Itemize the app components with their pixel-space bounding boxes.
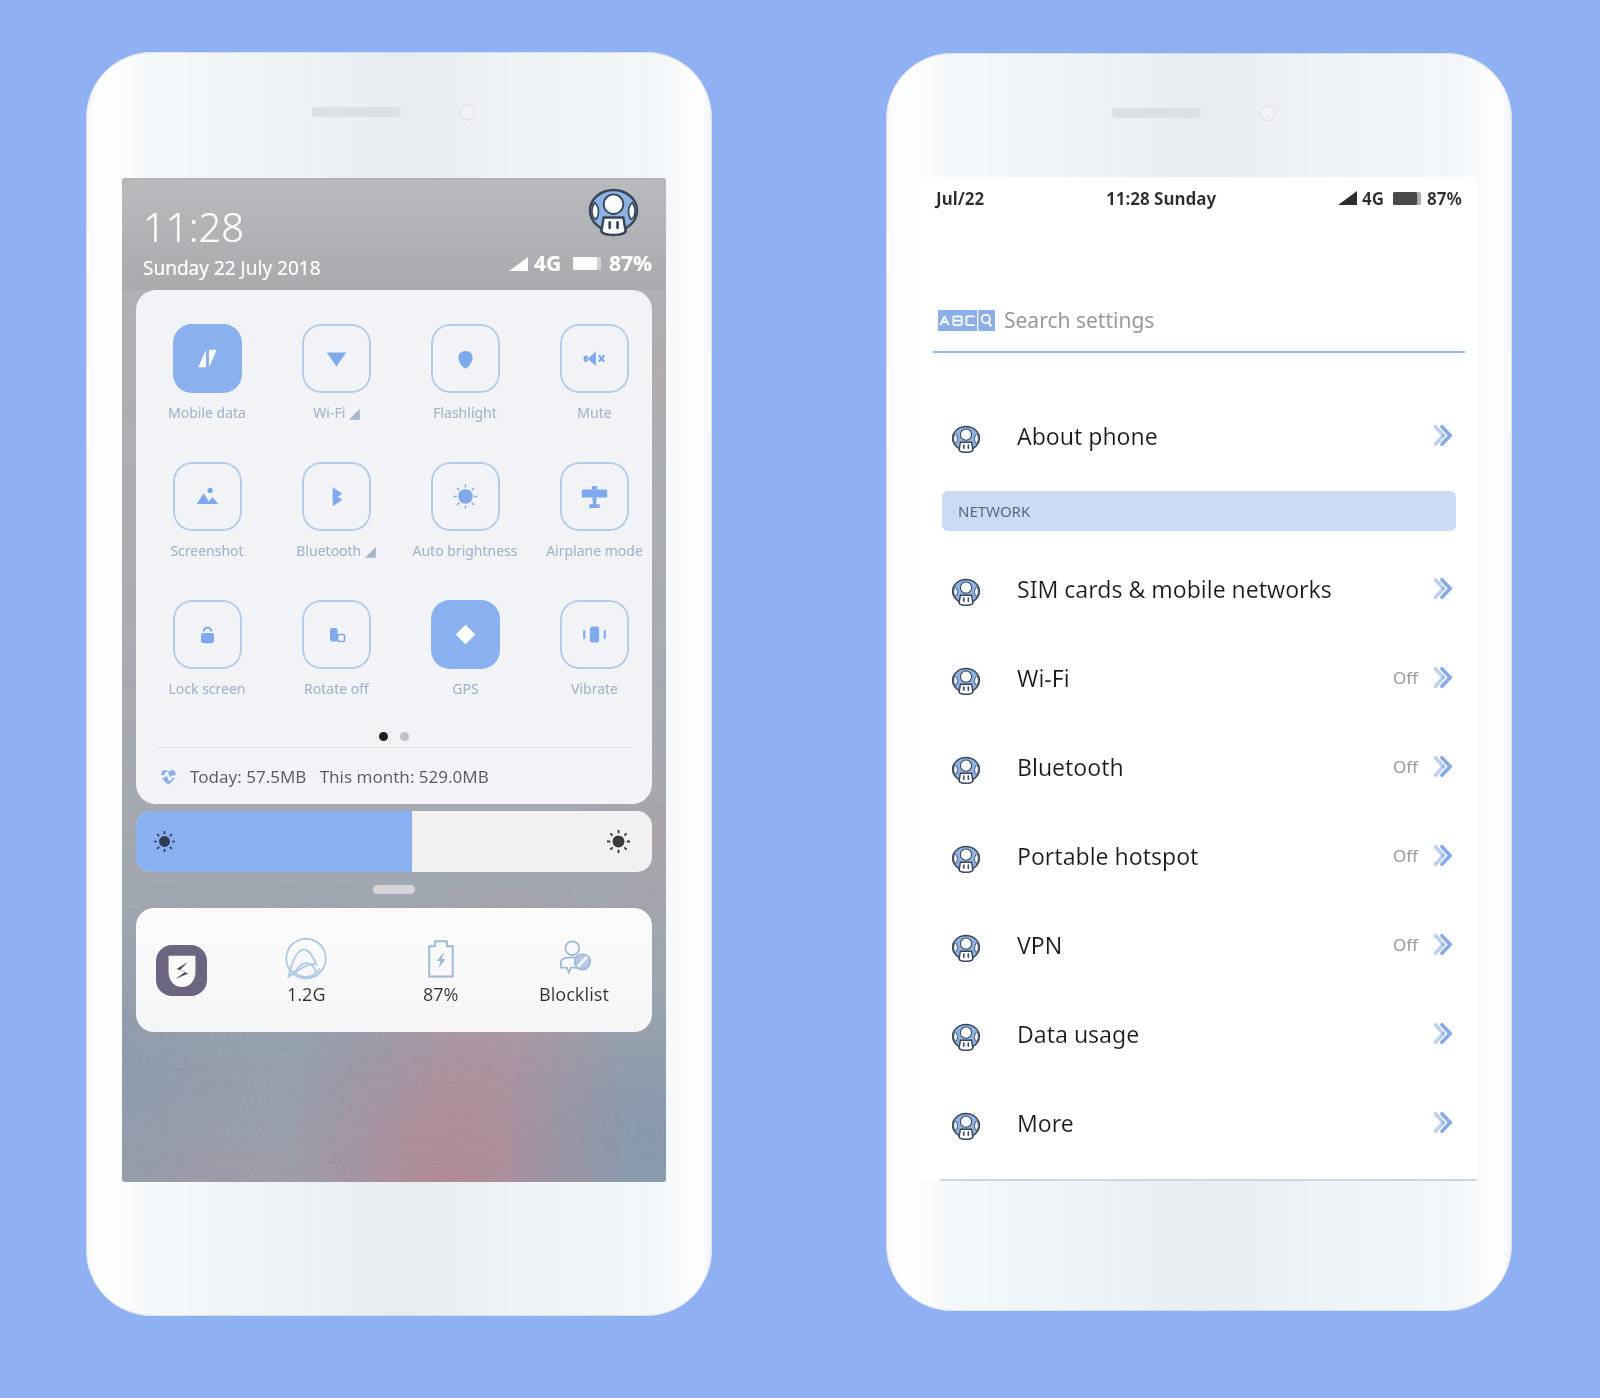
staticText: Auto brightness xyxy=(412,541,518,560)
button[interactable]: VPN xyxy=(920,900,1478,989)
button[interactable]: Lock screen xyxy=(143,600,271,698)
staticText: Portable hotspot xyxy=(1017,840,1199,871)
staticText: 87% xyxy=(1427,187,1462,210)
staticText: 11:28 xyxy=(143,199,245,253)
button[interactable]: Wi-Fi xyxy=(920,633,1478,722)
staticText: 87% xyxy=(609,249,652,278)
staticText: Mobile data xyxy=(168,403,246,422)
staticText: Bluetooth xyxy=(1017,751,1124,782)
staticText: SIM cards & mobile networks xyxy=(1017,573,1332,604)
staticText: Bluetooth ◢ xyxy=(296,541,376,560)
staticText: Off xyxy=(1393,666,1418,689)
staticText: Wi-Fi ◢ xyxy=(313,403,360,422)
staticText: 87% xyxy=(423,982,459,1007)
button[interactable]: Mobile data xyxy=(143,324,271,422)
staticText: Airplane mode xyxy=(546,541,643,560)
staticText: GPS xyxy=(452,679,479,698)
staticText: Data usage xyxy=(1017,1018,1140,1049)
button[interactable]: Bluetooth xyxy=(920,722,1478,811)
staticText: More xyxy=(1017,1107,1074,1138)
staticText: 1.2G xyxy=(287,982,326,1007)
button[interactable]: About phone xyxy=(920,391,1478,480)
staticText: Sunday 22 July 2018 xyxy=(143,255,321,281)
button[interactable]: GPS xyxy=(401,600,529,698)
button[interactable]: Flashlight xyxy=(401,324,529,422)
button[interactable]: Screenshot xyxy=(143,462,271,560)
button[interactable]: Bluetooth ◢ xyxy=(272,462,400,560)
staticText: About phone xyxy=(1017,420,1158,451)
staticText: Today: 57.5MB This month: 529.0MB xyxy=(190,765,489,788)
staticText: VPN xyxy=(1017,929,1063,960)
button[interactable]: Portable hotspot xyxy=(920,811,1478,900)
staticText: Lock screen xyxy=(168,679,246,698)
staticText: Search settings xyxy=(1004,306,1155,335)
staticText: Blocklist xyxy=(539,982,609,1007)
button[interactable]: Security xyxy=(156,945,207,996)
staticText: Screenshot xyxy=(170,541,244,560)
staticText: Vibrate xyxy=(571,679,618,698)
button[interactable]: 1.2G xyxy=(246,938,366,1007)
button[interactable]: Profile xyxy=(589,189,638,238)
button[interactable]: More xyxy=(920,1078,1478,1167)
staticText: 4G xyxy=(534,249,562,278)
button[interactable]: Blocklist xyxy=(514,938,634,1007)
button[interactable]: Mute xyxy=(530,324,652,422)
staticText: 4G xyxy=(1362,187,1385,210)
button[interactable]: Brightness xyxy=(136,811,652,872)
button[interactable]: SIM cards & mobile networks xyxy=(920,544,1478,633)
staticText: Jul/22 xyxy=(936,187,985,210)
button[interactable]: Search settings xyxy=(938,303,1464,337)
staticText: Off xyxy=(1393,755,1418,778)
staticText: Wi-Fi xyxy=(1017,662,1070,693)
button[interactable]: Auto brightness xyxy=(401,462,529,560)
staticText: 11:28 Sunday xyxy=(1106,187,1217,210)
staticText: Rotate off xyxy=(304,679,369,698)
staticText: NETWORK xyxy=(958,501,1031,521)
button[interactable]: Rotate off xyxy=(272,600,400,698)
button[interactable]: 87% xyxy=(381,938,501,1007)
button[interactable]: Data usage xyxy=(920,989,1478,1078)
button[interactable]: Airplane mode xyxy=(530,462,652,560)
staticText: Off xyxy=(1393,844,1418,867)
staticText: Mute xyxy=(577,403,612,422)
button[interactable]: Wi-Fi ◢ xyxy=(272,324,400,422)
staticText: Flashlight xyxy=(433,403,497,422)
staticText: Off xyxy=(1393,933,1418,956)
button[interactable]: Vibrate xyxy=(530,600,652,698)
